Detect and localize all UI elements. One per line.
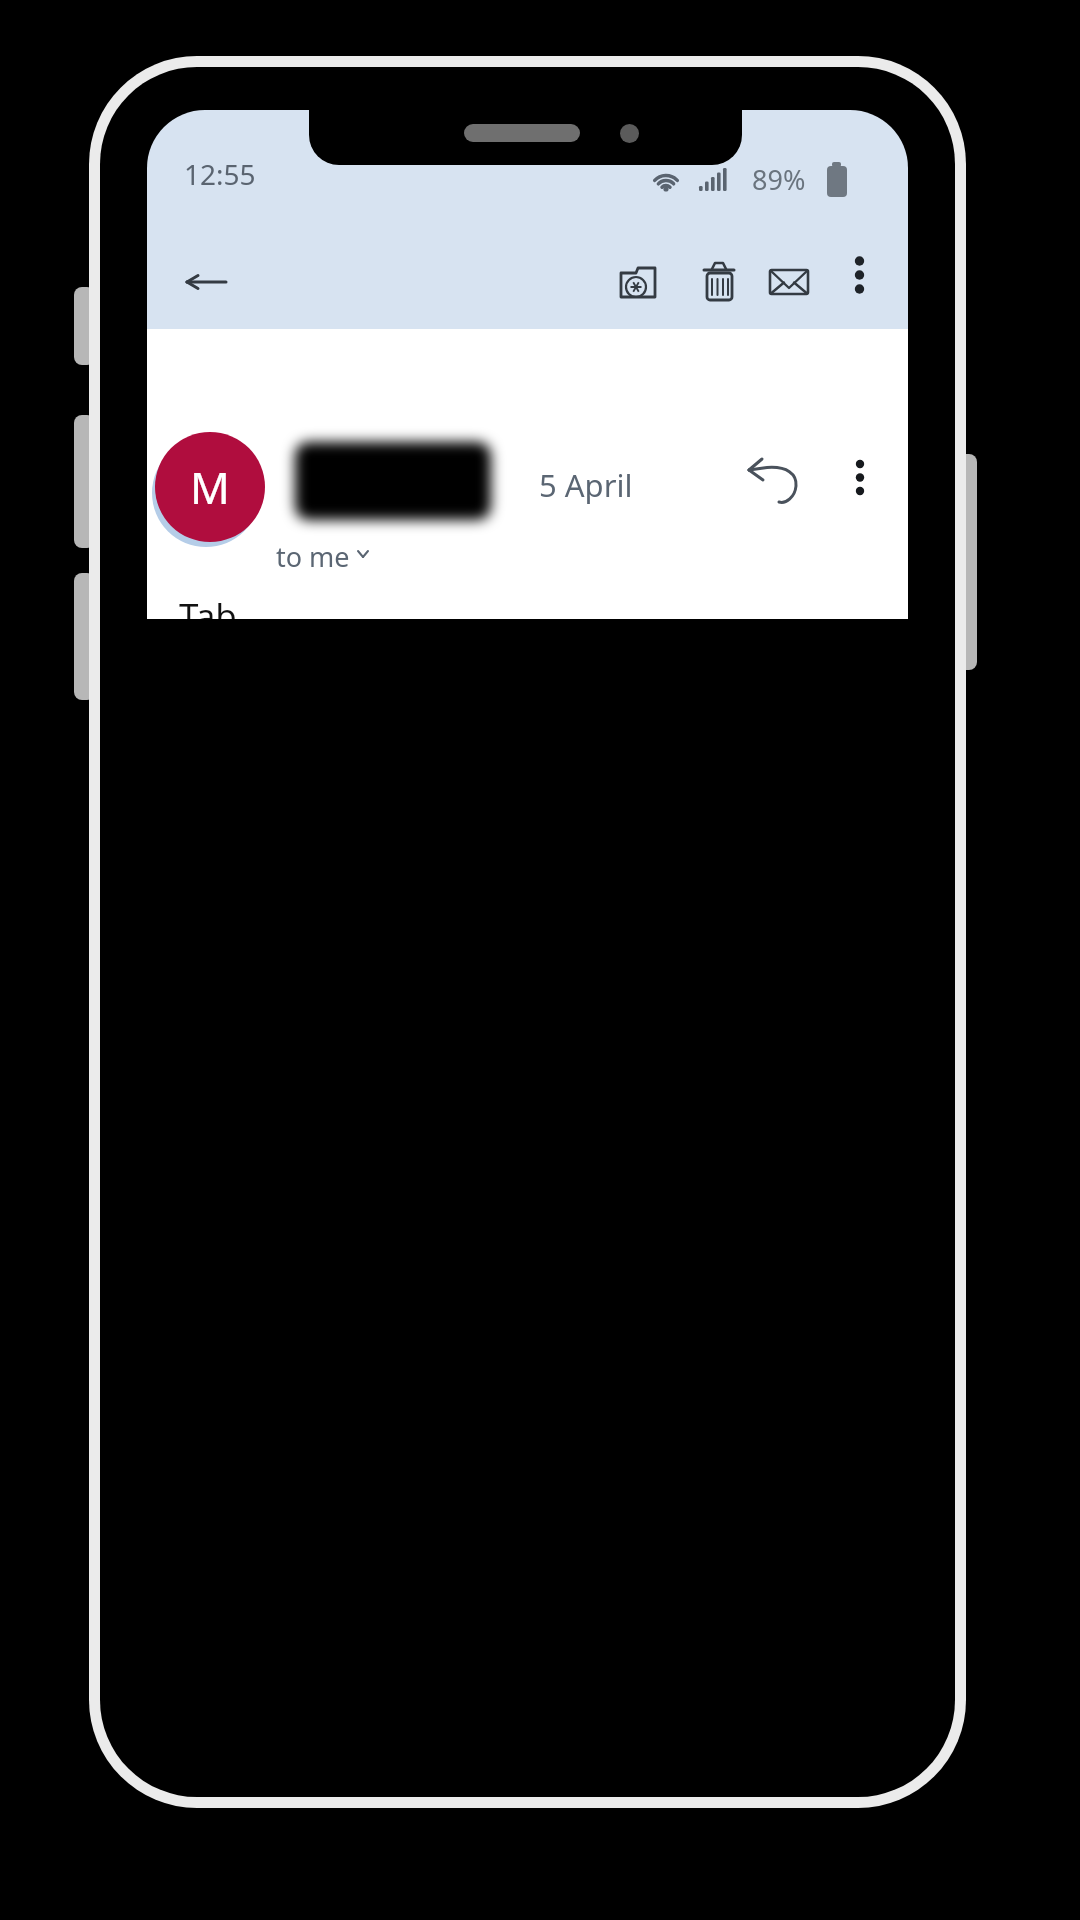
staticText: 89%	[752, 161, 806, 198]
staticText: 5 April	[539, 464, 633, 506]
staticText: 12:55	[184, 155, 256, 193]
staticText: M	[190, 457, 230, 517]
staticText: to me	[276, 538, 350, 575]
staticText: Tab	[179, 592, 237, 619]
